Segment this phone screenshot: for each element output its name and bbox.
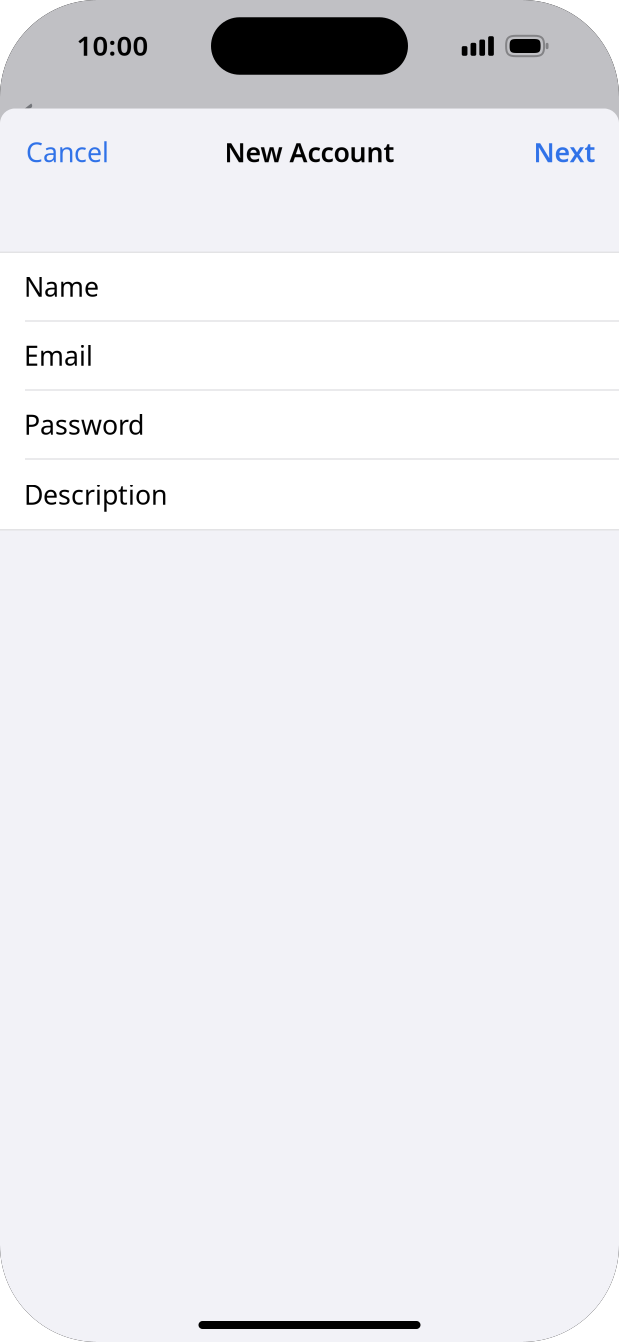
button[interactable]: Name [0,253,619,322]
button[interactable]: Cancel [13,120,122,184]
staticText: Name [24,269,99,304]
staticText: Cancel [26,134,109,170]
button[interactable]: Password [0,391,619,460]
staticText: Email [24,338,93,373]
staticText: Description [24,477,167,512]
staticText: 10:00 [76,26,148,64]
button[interactable]: Email [0,322,619,391]
button[interactable]: Next [520,120,608,184]
button[interactable]: Description [0,460,619,529]
staticText: Password [24,407,144,442]
staticText: Next [533,134,595,170]
staticText: New Account [224,134,394,170]
